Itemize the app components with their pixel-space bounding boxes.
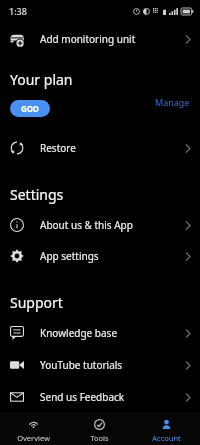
staticText: Settings	[10, 185, 64, 204]
staticText: Your plan	[10, 70, 73, 89]
staticText: 1:38	[9, 5, 27, 17]
button[interactable]: Manage	[155, 95, 200, 108]
staticText: Overview	[17, 433, 50, 443]
other: About us & this App	[10, 218, 24, 232]
staticText: Tools	[90, 433, 109, 443]
staticText: Knowledge base	[40, 326, 118, 340]
staticText: Add monitoring unit	[40, 32, 136, 46]
button[interactable]: App settings	[0, 241, 200, 271]
other: Restore	[10, 141, 24, 155]
staticText: Send us Feedback	[40, 390, 125, 404]
other: Send us Feedback	[10, 390, 24, 404]
staticText: About us & this App	[40, 218, 133, 232]
other: App settings	[10, 249, 24, 263]
staticText: Support	[10, 293, 63, 312]
button[interactable]: Send us Feedback	[0, 382, 200, 412]
staticText: Manage	[155, 96, 190, 108]
button[interactable]: Overview	[0, 412, 66, 445]
other: YouTube tutorials	[10, 358, 24, 372]
button[interactable]: About us & this App	[0, 210, 200, 240]
staticText: Restore	[40, 141, 76, 155]
button[interactable]: Account	[133, 412, 200, 445]
button[interactable]: Tools	[66, 412, 133, 445]
button[interactable]: YouTube tutorials	[0, 350, 200, 380]
staticText: Account	[152, 433, 181, 443]
button[interactable]: GOD	[10, 100, 50, 117]
button[interactable]: Restore	[0, 133, 200, 163]
other: Add monitoring unit	[10, 32, 24, 46]
button[interactable]: Add monitoring unit	[0, 22, 200, 56]
staticText: App settings	[40, 249, 99, 263]
staticText: YouTube tutorials	[40, 358, 123, 372]
button[interactable]: Knowledge base	[0, 318, 200, 348]
staticText: GOD	[21, 103, 39, 114]
other: Knowledge base	[10, 326, 24, 340]
